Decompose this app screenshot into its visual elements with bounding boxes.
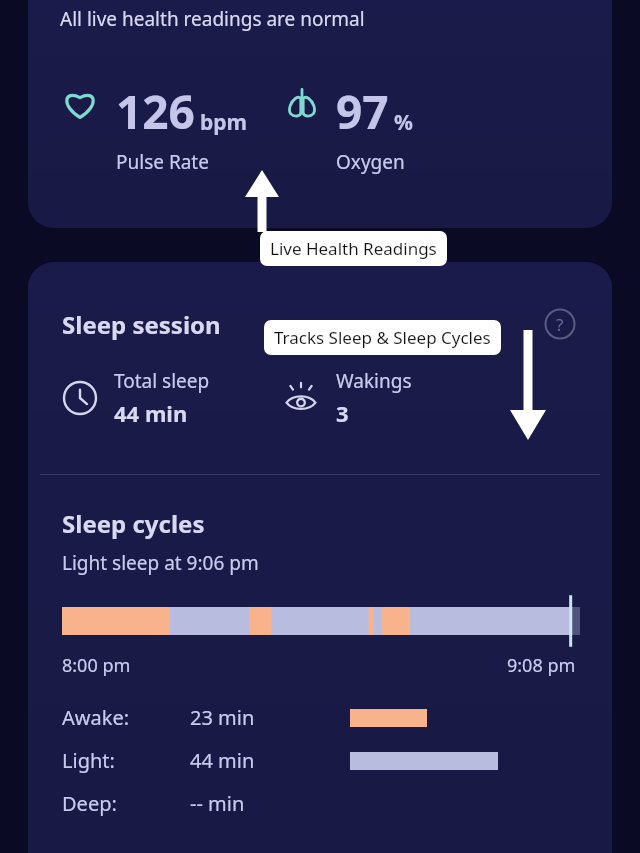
button[interactable]: Live Health Readings: [270, 237, 437, 260]
staticText: Wakings: [336, 368, 412, 394]
staticText: 126: [116, 80, 195, 143]
button[interactable]: Deep:: [62, 790, 580, 817]
staticText: Total sleep: [114, 368, 210, 394]
staticText: 3: [336, 398, 349, 428]
staticText: ?: [556, 313, 564, 336]
button[interactable]: Sleep session: [28, 262, 612, 853]
staticText: Awake:: [62, 704, 130, 731]
staticText: bpm: [200, 108, 248, 137]
staticText: 44 min: [114, 398, 188, 428]
staticText: Oxygen: [336, 149, 405, 175]
button[interactable]: Awake:: [62, 704, 580, 731]
staticText: Pulse Rate: [116, 149, 209, 175]
staticText: Deep:: [62, 790, 117, 817]
staticText: Live Health Readings: [270, 237, 437, 260]
staticText: Sleep cycles: [62, 507, 205, 540]
staticText: Light sleep at 9:06 pm: [62, 550, 259, 576]
staticText: Sleep session: [62, 308, 221, 341]
staticText: %: [394, 108, 413, 137]
button[interactable]: Tracks Sleep & Sleep Cycles: [274, 326, 491, 349]
staticText: Tracks Sleep & Sleep Cycles: [274, 326, 491, 349]
staticText: 9:08 pm: [507, 653, 576, 678]
button[interactable]: Help: [542, 306, 578, 342]
staticText: 8:00 pm: [62, 653, 131, 678]
staticText: -- min: [190, 790, 245, 817]
staticText: All live health readings are normal: [60, 6, 365, 32]
staticText: 23 min: [190, 704, 255, 731]
button[interactable]: All live health readings are normal: [28, 0, 612, 228]
button[interactable]: Light:: [62, 747, 580, 774]
staticText: Light:: [62, 747, 115, 774]
staticText: 44 min: [190, 747, 255, 774]
staticText: 97: [336, 80, 389, 143]
